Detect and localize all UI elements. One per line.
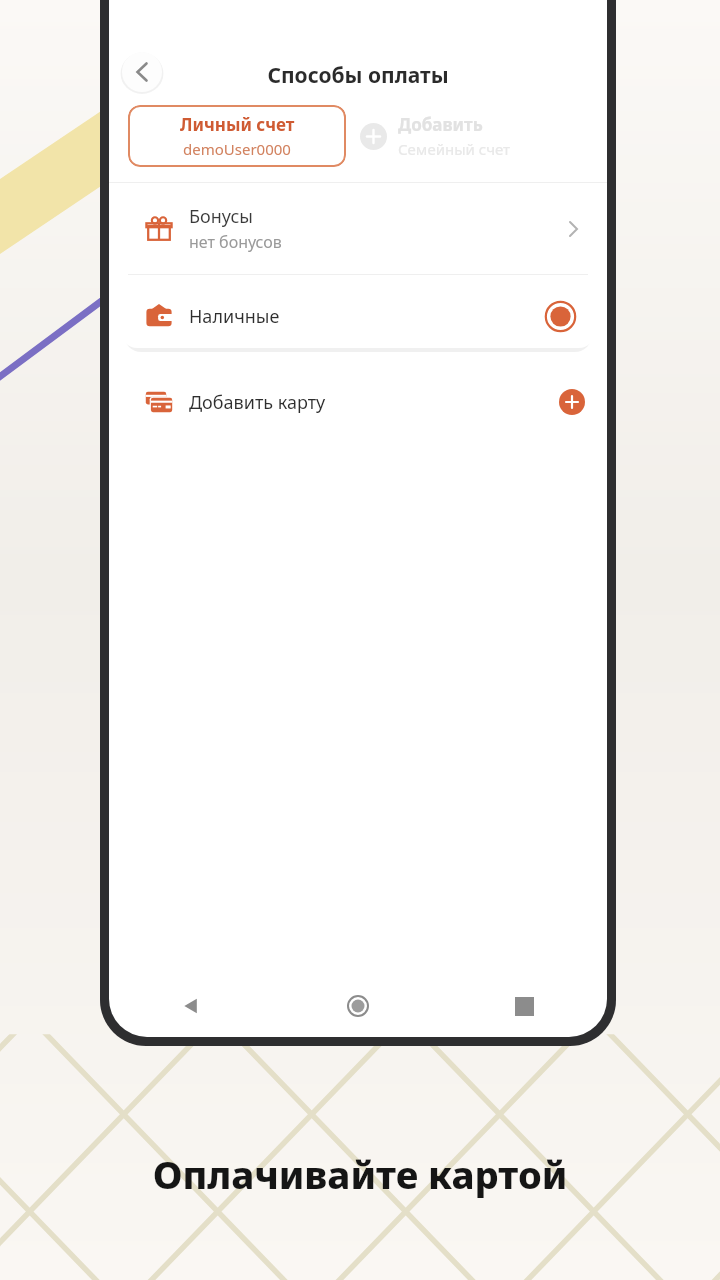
button[interactable]: Бонусы <box>109 183 607 274</box>
staticText: Оплачивайте картой <box>0 1148 720 1200</box>
button[interactable]: Назад <box>120 50 164 94</box>
staticText: Добавить карту <box>189 390 559 415</box>
button[interactable]: Домой <box>275 975 441 1037</box>
button[interactable]: Наличные <box>121 284 595 348</box>
button[interactable]: Добавить <box>360 113 511 159</box>
staticText: Семейный счет <box>398 139 511 159</box>
button[interactable]: Добавить карту <box>109 361 607 443</box>
staticText: Бонусы <box>189 204 253 229</box>
staticText: Личный счет <box>180 113 295 136</box>
staticText: Наличные <box>189 304 545 329</box>
button[interactable]: Личный счет <box>128 105 346 167</box>
button[interactable]: Назад <box>109 975 275 1037</box>
staticText: нет бонусов <box>189 231 282 253</box>
staticText: Способы оплаты <box>109 61 607 90</box>
staticText: demoUser0000 <box>183 139 291 159</box>
button[interactable]: Обзор <box>441 975 607 1037</box>
staticText: Добавить <box>398 113 483 136</box>
